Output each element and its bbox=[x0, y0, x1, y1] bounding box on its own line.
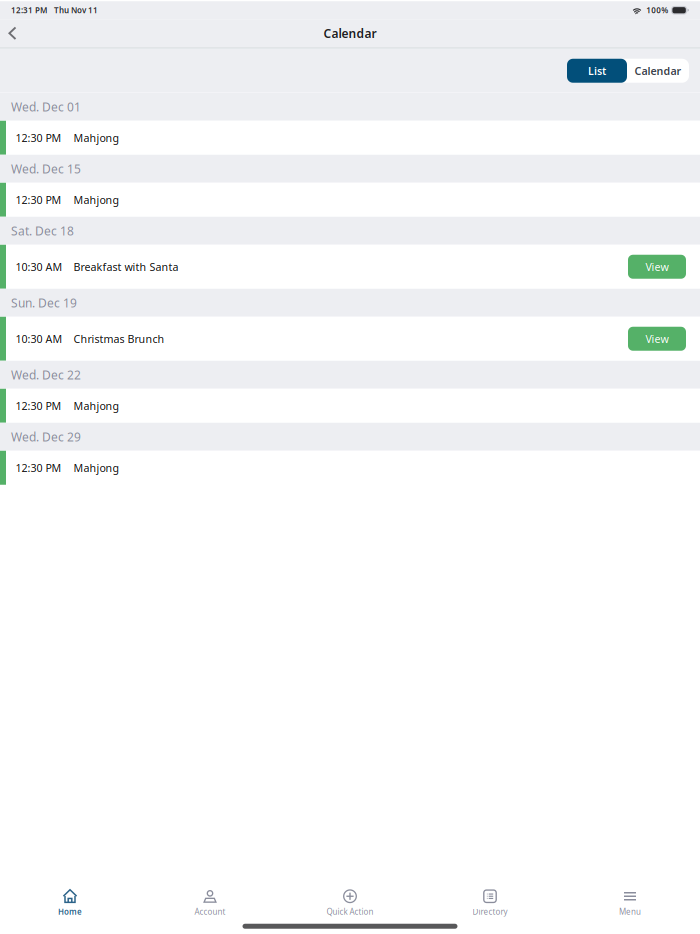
staticText: Account bbox=[194, 906, 225, 917]
staticText: Directory bbox=[472, 906, 507, 917]
staticText: 12:31 PM bbox=[11, 5, 47, 15]
button[interactable]: Menu bbox=[560, 883, 700, 917]
staticText: Mahjong bbox=[73, 399, 119, 413]
button[interactable]: Quick Action bbox=[280, 883, 420, 917]
button[interactable]: Home bbox=[0, 883, 140, 917]
staticText: Sun. Dec 19 bbox=[11, 295, 77, 311]
staticText: Calendar bbox=[323, 25, 376, 41]
staticText: 12:30 PM bbox=[15, 399, 61, 413]
button[interactable]: List bbox=[567, 59, 627, 83]
staticText: 10:30 AM bbox=[15, 332, 62, 346]
button[interactable]: Calendar bbox=[627, 59, 689, 83]
staticText: Wed. Dec 22 bbox=[11, 367, 81, 383]
button[interactable]: Account bbox=[140, 883, 280, 917]
staticText: View bbox=[645, 260, 668, 274]
staticText: 10:30 AM bbox=[15, 260, 62, 274]
staticText: Wed. Dec 15 bbox=[11, 161, 81, 177]
staticText: Thu Nov 11 bbox=[54, 5, 98, 15]
staticText: Christmas Brunch bbox=[73, 332, 164, 346]
button[interactable]: Directory bbox=[420, 883, 560, 917]
staticText: Home bbox=[58, 906, 82, 917]
button[interactable]: Back bbox=[1, 19, 24, 47]
staticText: Mahjong bbox=[73, 193, 119, 207]
staticText: 12:30 PM bbox=[15, 461, 61, 475]
staticText: Sat. Dec 18 bbox=[11, 223, 74, 239]
staticText: Breakfast with Santa bbox=[73, 260, 178, 274]
staticText: Wed. Dec 01 bbox=[11, 99, 81, 115]
staticText: 12:30 PM bbox=[15, 193, 61, 207]
staticText: Menu bbox=[619, 906, 641, 917]
staticText: 12:30 PM bbox=[15, 131, 61, 145]
staticText: View bbox=[645, 332, 668, 346]
staticText: Mahjong bbox=[73, 131, 119, 145]
staticText: Wed. Dec 29 bbox=[11, 429, 81, 445]
staticText: Mahjong bbox=[73, 461, 119, 475]
staticText: List bbox=[588, 64, 606, 78]
button[interactable]: View bbox=[628, 255, 686, 279]
staticText: Calendar bbox=[634, 64, 681, 78]
button[interactable]: View bbox=[628, 327, 686, 351]
staticText: 100% bbox=[646, 5, 668, 15]
staticText: Quick Action bbox=[326, 906, 373, 917]
